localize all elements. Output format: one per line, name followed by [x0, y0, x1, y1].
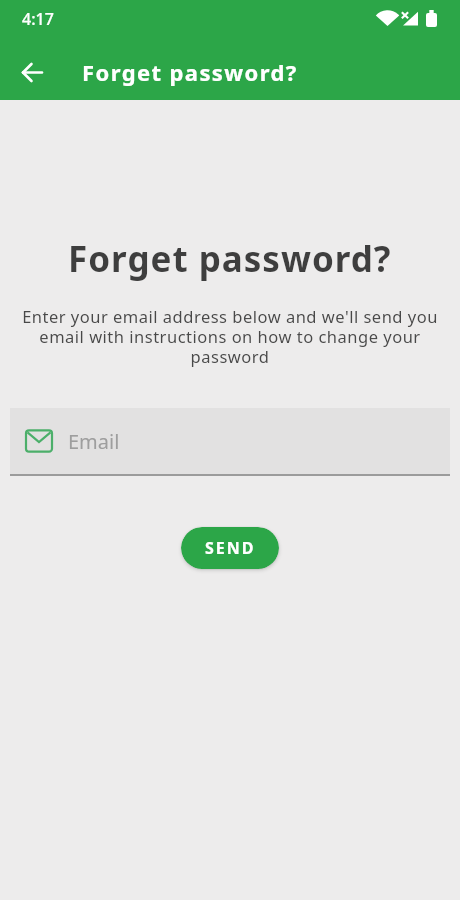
staticText: SEND: [205, 537, 256, 559]
staticText: Email: [68, 428, 120, 455]
button[interactable]: Email: [10, 408, 450, 476]
staticText: Forget password?: [68, 235, 392, 283]
staticText: Enter your email address below and we'll…: [22, 305, 438, 368]
staticText: 4:17: [22, 8, 54, 30]
button[interactable]: [0, 44, 56, 100]
staticText: Forget password?: [82, 57, 298, 87]
button[interactable]: SEND: [181, 527, 279, 569]
